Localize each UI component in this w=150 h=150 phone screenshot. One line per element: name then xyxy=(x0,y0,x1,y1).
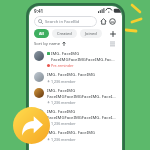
button[interactable]: View options xyxy=(108,40,117,48)
button[interactable]: Share xyxy=(13,107,50,144)
button[interactable]: Messages xyxy=(108,17,117,26)
staticText: Created xyxy=(57,31,72,36)
button[interactable]: IMG- FaceIMG- FaceIMG xyxy=(29,128,122,144)
button[interactable]: Created xyxy=(52,29,77,38)
staticText: 9:41 xyxy=(34,8,44,14)
button[interactable]: Search in FaceBid xyxy=(34,16,97,27)
button[interactable]: Notifications xyxy=(99,17,108,26)
staticText: Search in FaceBid xyxy=(45,19,80,25)
staticText: Sort by name xyxy=(34,41,61,47)
staticText: 1,236 member xyxy=(51,137,76,142)
button[interactable]: Joined xyxy=(80,29,102,38)
staticText: IMG- FaceIMG FaceIMGFaceIMGFaceIMG-FaceI… xyxy=(51,51,117,62)
staticText: IMG- FaceIMG- FaceIMG xyxy=(47,72,96,78)
staticText: 1,236 member xyxy=(51,100,76,105)
staticText: IMG- FaceIMG- FaceIMG xyxy=(47,130,96,136)
button[interactable]: Sort by name xyxy=(34,41,66,47)
staticText: Joined xyxy=(85,31,97,36)
button[interactable]: IMG- FaceIMG FaceIMGFaceIMGFaceIMG- Face… xyxy=(29,86,122,107)
button[interactable]: IMG- FaceIMG FaceIMGFaceIMGFaceIMG- Face… xyxy=(29,107,122,128)
button[interactable]: IMG- FaceIMG- FaceIMG xyxy=(29,70,122,86)
staticText: IMG- FaceIMG FaceIMGFaceIMGFaceIMG- Face… xyxy=(47,88,117,99)
button[interactable]: Create xyxy=(108,29,117,38)
button[interactable]: IMG- FaceIMG FaceIMGFaceIMGFaceIMG-FaceI… xyxy=(29,49,122,70)
staticText: 1,236 member xyxy=(51,79,76,84)
staticText: 1,236 member xyxy=(51,121,76,126)
staticText: IMG- FaceIMG FaceIMGFaceIMGFaceIMG- Face… xyxy=(47,109,117,120)
staticText: Pre-reminder xyxy=(51,63,74,68)
staticText: All xyxy=(39,31,44,36)
button[interactable]: All xyxy=(34,29,49,38)
